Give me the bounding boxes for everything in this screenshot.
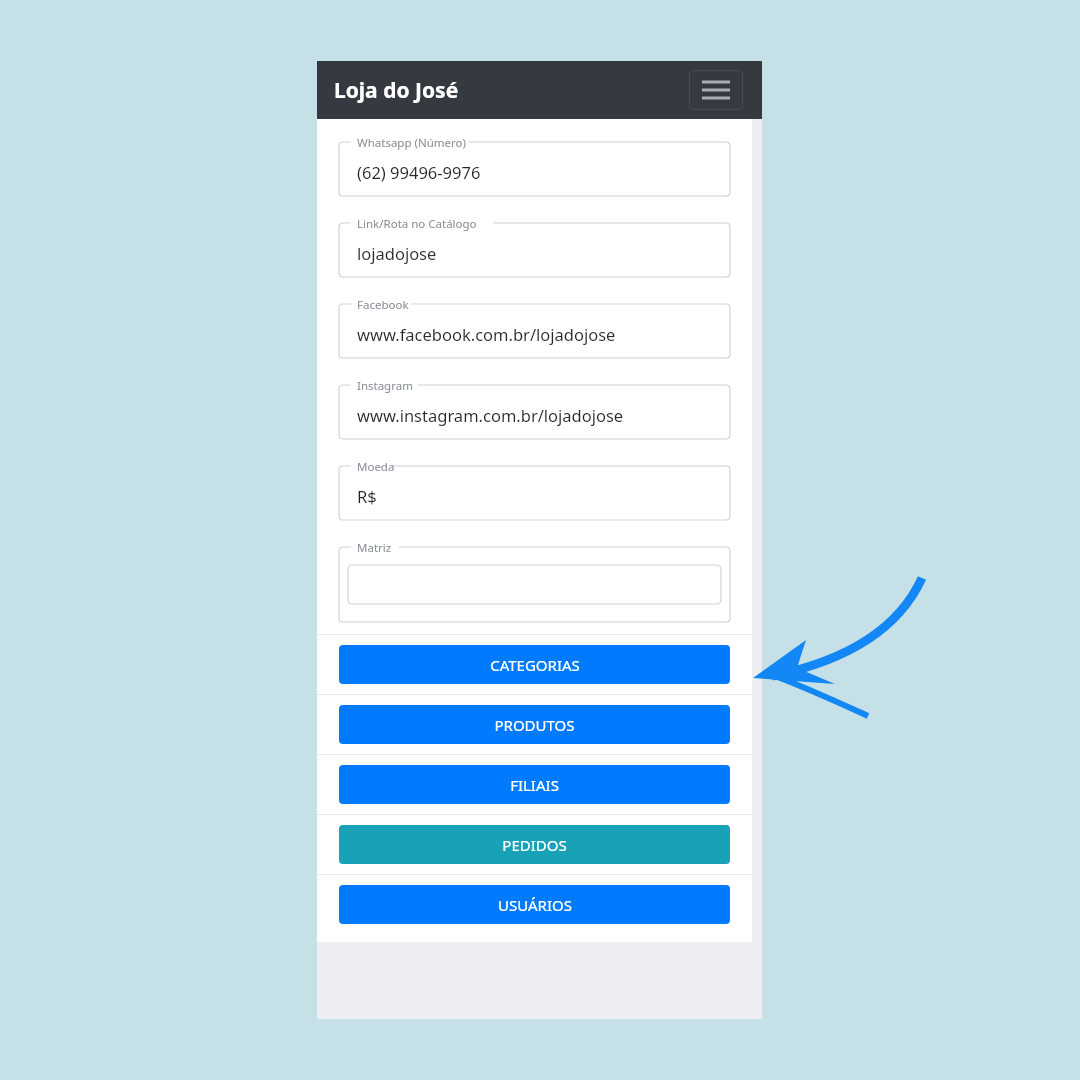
button[interactable]: Moeda (339, 457, 730, 520)
button[interactable]: PEDIDOS (339, 825, 730, 864)
button[interactable]: USUÁRIOS (339, 885, 730, 924)
staticText: Moeda (357, 459, 395, 475)
staticText: Whatsapp (Número) (357, 135, 466, 151)
staticText: PRODUTOS (494, 715, 575, 735)
button[interactable]: Instagram (339, 376, 730, 439)
staticText: PEDIDOS (502, 835, 567, 855)
staticText: lojadojose (357, 242, 437, 264)
button[interactable] (348, 565, 721, 604)
staticText: www.facebook.com.br/lojadojose (357, 323, 616, 345)
staticText: USUÁRIOS (498, 895, 572, 915)
button[interactable]: PRODUTOS (339, 705, 730, 744)
staticText: Matriz (357, 540, 392, 556)
button[interactable]: CATEGORIAS (339, 645, 730, 684)
staticText: (62) 99496-9976 (357, 161, 481, 183)
button[interactable]: Link/Rota no Catálogo (339, 214, 730, 277)
button[interactable]: Matriz (339, 538, 730, 622)
staticText: Loja do José (334, 76, 459, 105)
staticText: Link/Rota no Catálogo (357, 216, 477, 232)
staticText: CATEGORIAS (490, 655, 580, 675)
staticText: FILIAIS (510, 775, 559, 795)
staticText: www.instagram.com.br/lojadojose (357, 404, 624, 426)
button[interactable]: Whatsapp (Número) (339, 133, 730, 196)
button[interactable]: FILIAIS (339, 765, 730, 804)
button[interactable]: Menu (689, 70, 743, 110)
staticText: Facebook (357, 297, 409, 313)
button[interactable]: Facebook (339, 295, 730, 358)
staticText: R$ (357, 485, 377, 507)
staticText: Instagram (357, 378, 413, 394)
